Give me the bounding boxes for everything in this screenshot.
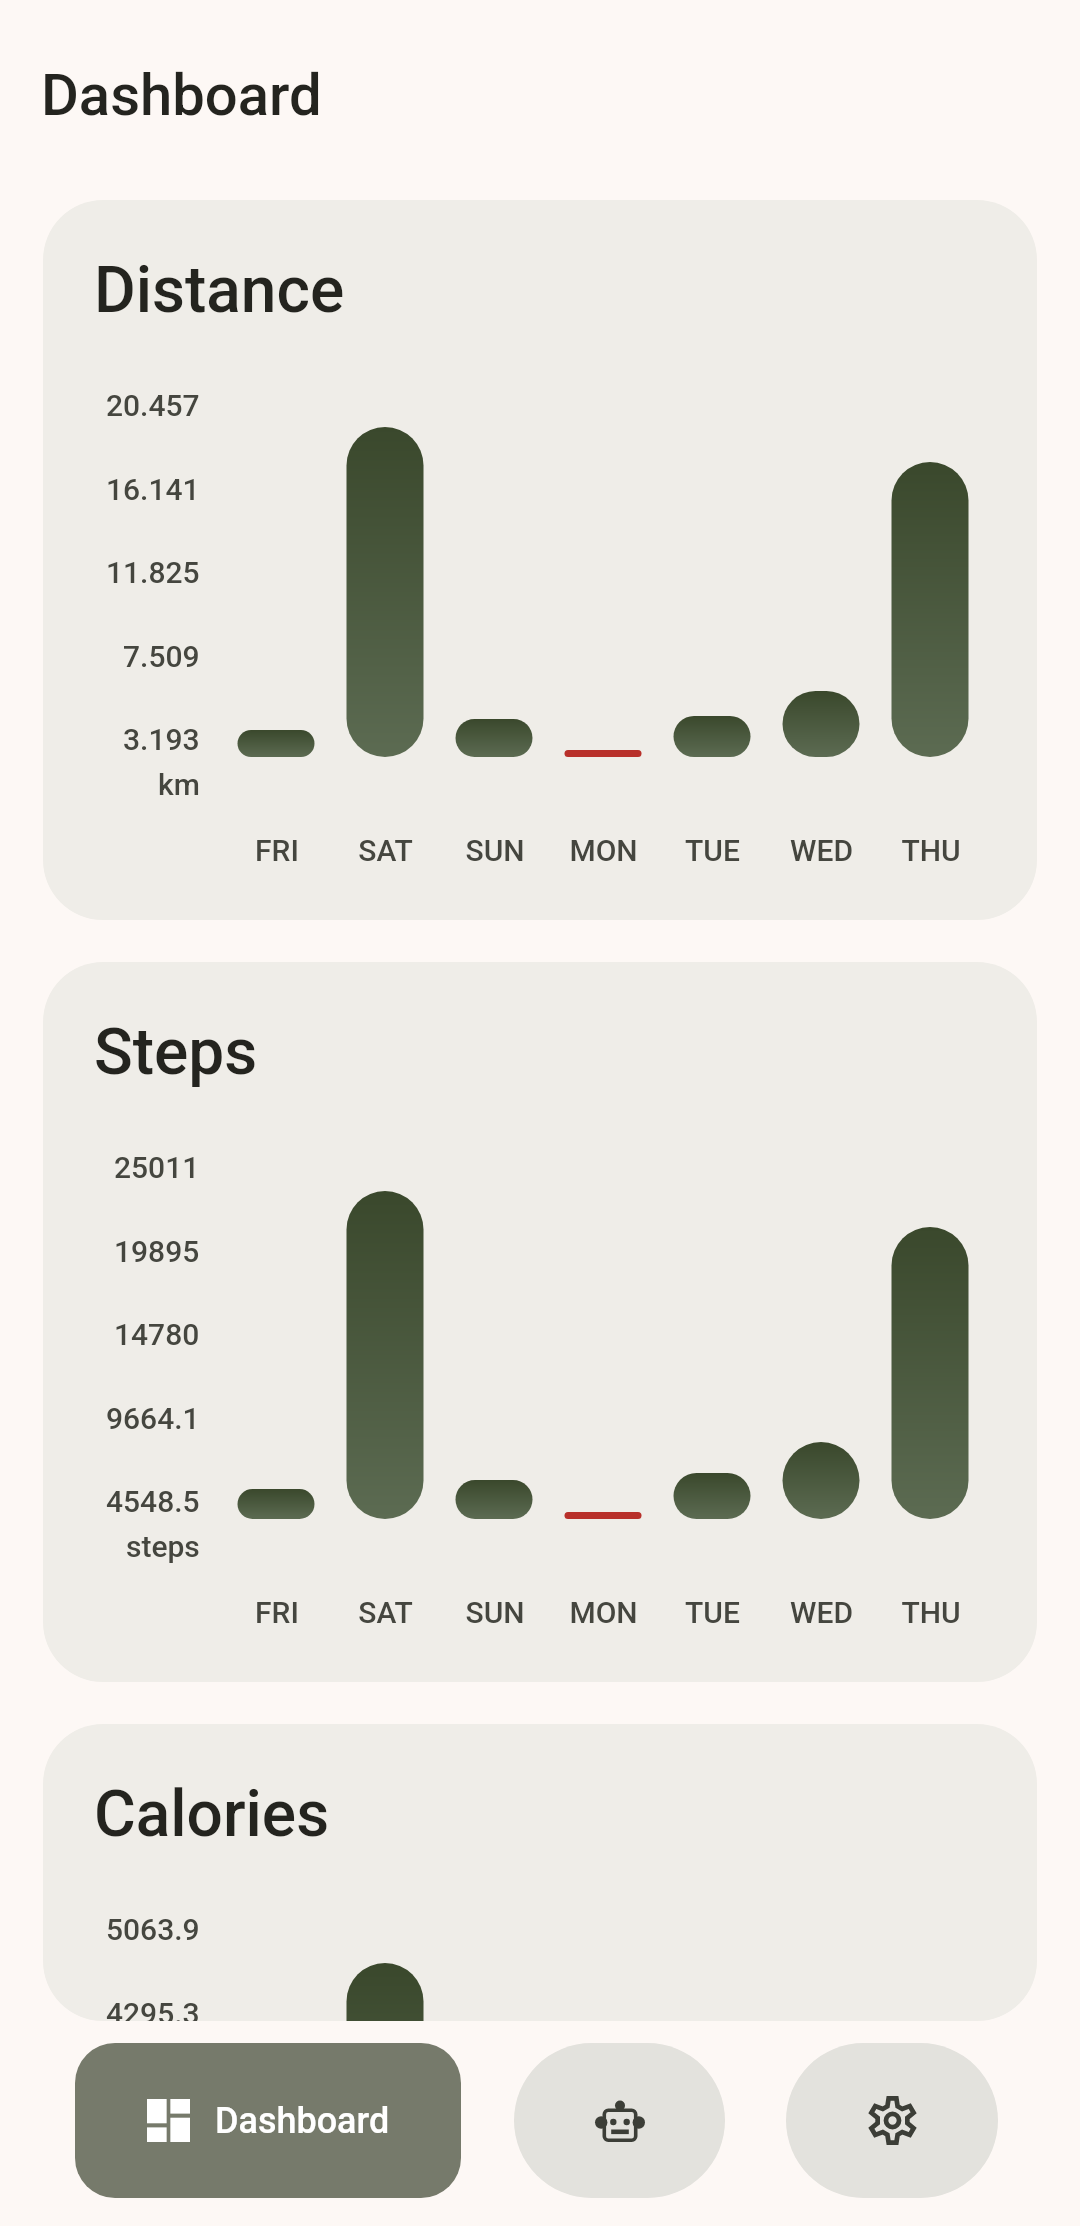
staticText: Calories [94,1777,330,1852]
staticText: 7.509 [123,639,200,674]
button[interactable]: Settings [786,2043,998,2198]
staticText: WED [790,833,853,868]
staticText: SAT [358,1595,413,1630]
staticText: 19895 [114,1234,200,1269]
staticText: km [158,767,200,802]
staticText: 16.141 [106,472,200,507]
staticText: WED [790,1595,853,1630]
staticText: 5063.9 [106,1912,200,1947]
button[interactable]: Calories [43,1724,1037,2021]
staticText: 14780 [114,1317,200,1352]
button[interactable]: Steps [43,962,1037,1682]
button[interactable]: Distance [43,200,1037,920]
staticText: MON [569,833,638,868]
button[interactable]: Assistant [514,2043,725,2198]
staticText: 11.825 [106,555,200,590]
staticText: THU [901,1595,961,1630]
staticText: SAT [358,833,413,868]
button[interactable]: Dashboard [75,2043,461,2198]
staticText: Distance [94,253,345,328]
staticText: 4548.5 [106,1484,200,1519]
staticText: THU [901,833,961,868]
staticText: TUE [685,1595,740,1630]
staticText: SUN [465,833,525,868]
staticText: steps [126,1529,200,1564]
staticText: Dashboard [215,2100,390,2142]
staticText: MON [569,1595,638,1630]
staticText: 25011 [114,1150,200,1185]
staticText: FRI [255,833,299,868]
staticText: Dashboard [41,61,322,129]
staticText: FRI [255,1595,299,1630]
staticText: SUN [465,1595,525,1630]
staticText: 20.457 [106,388,200,423]
staticText: 4295.3 [106,1996,200,2021]
staticText: TUE [685,833,740,868]
staticText: 3.193 [123,722,200,757]
staticText: 9664.1 [106,1401,200,1436]
staticText: Steps [94,1015,258,1090]
